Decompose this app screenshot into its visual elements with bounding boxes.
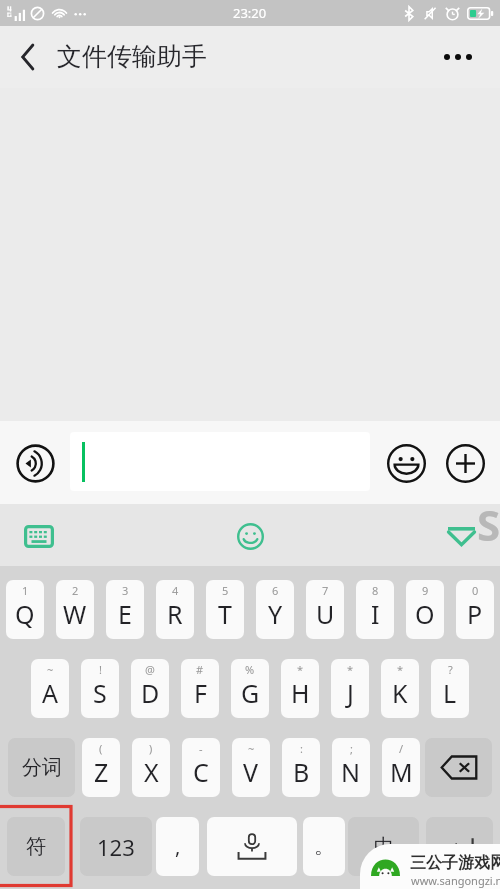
button[interactable]: Emoji xyxy=(381,438,431,488)
staticText: 分词 xyxy=(22,755,62,780)
button[interactable]: , xyxy=(156,817,199,876)
staticText: J xyxy=(347,676,354,710)
button[interactable]: 2 xyxy=(56,580,94,639)
staticText: G xyxy=(241,676,260,710)
staticText: 1 xyxy=(22,583,29,598)
button[interactable]: 8 xyxy=(356,580,394,639)
button[interactable]: 3 xyxy=(106,580,144,639)
button[interactable]: : xyxy=(282,738,320,797)
staticText: 2 xyxy=(72,583,79,598)
staticText: 7 xyxy=(322,583,329,598)
staticText: R xyxy=(167,597,183,631)
staticText: A xyxy=(42,676,58,710)
staticText: Z xyxy=(94,755,109,789)
button[interactable]: More options xyxy=(436,26,500,88)
button[interactable]: ; xyxy=(332,738,370,797)
staticText: N xyxy=(341,755,361,789)
staticText: I xyxy=(371,597,380,631)
button[interactable]: / xyxy=(382,738,420,797)
staticText: 。 xyxy=(314,834,334,859)
staticText: 9 xyxy=(422,583,429,598)
button[interactable]: @ xyxy=(131,659,169,718)
staticText: / xyxy=(399,741,404,756)
button[interactable]: * xyxy=(331,659,369,718)
staticText: * xyxy=(347,662,354,677)
staticText: ; xyxy=(350,741,353,756)
staticText: E xyxy=(118,597,132,631)
staticText: L xyxy=(443,676,457,710)
button[interactable]: ~ xyxy=(232,738,270,797)
button[interactable]: 7 xyxy=(306,580,344,639)
staticText: X xyxy=(144,755,159,789)
staticText: : xyxy=(300,741,303,756)
button[interactable]: 中 xyxy=(348,817,419,876)
button[interactable]: ! xyxy=(81,659,119,718)
staticText: U xyxy=(316,597,335,631)
staticText: D xyxy=(141,676,160,710)
button[interactable]: 分词 xyxy=(8,738,75,797)
staticText: M xyxy=(390,755,413,789)
button[interactable]: 。 xyxy=(303,817,345,876)
button[interactable]: 5 xyxy=(206,580,244,639)
button[interactable]: Voice input xyxy=(10,438,60,488)
staticText: , xyxy=(175,833,181,860)
staticText: 三公子游戏网 xyxy=(410,853,500,873)
button[interactable]: 符 xyxy=(7,817,65,876)
button[interactable]: ) xyxy=(132,738,170,797)
button[interactable]: Back xyxy=(0,26,56,88)
button[interactable]: Hide keyboard xyxy=(439,514,483,558)
staticText: ( xyxy=(99,741,103,756)
staticText: ? xyxy=(448,662,453,677)
button[interactable]: - xyxy=(182,738,220,797)
button[interactable]: 9 xyxy=(406,580,444,639)
button[interactable]: Keyboard xyxy=(17,514,61,558)
staticText: S xyxy=(477,496,500,553)
staticText: @ xyxy=(145,662,155,677)
button[interactable]: ~ xyxy=(31,659,69,718)
staticText: V xyxy=(243,755,259,789)
staticText: O xyxy=(415,597,435,631)
staticText: - xyxy=(199,741,203,756)
staticText: Q xyxy=(15,597,35,631)
staticText: 3 xyxy=(122,583,129,598)
button[interactable]: 4 xyxy=(156,580,194,639)
staticText: S xyxy=(93,676,107,710)
staticText: C xyxy=(193,755,209,789)
staticText: ~ xyxy=(248,741,255,756)
staticText: * xyxy=(297,662,304,677)
button[interactable]: ? xyxy=(431,659,469,718)
staticText: T xyxy=(218,597,232,631)
button[interactable]: # xyxy=(181,659,219,718)
staticText: % xyxy=(245,662,255,677)
staticText: ~ xyxy=(47,662,54,677)
button[interactable]: ( xyxy=(82,738,120,797)
staticText: K xyxy=(392,676,408,710)
button[interactable]: 123 xyxy=(80,817,152,876)
staticText: 文件传输助手 xyxy=(57,41,207,72)
staticText: ) xyxy=(149,741,153,756)
button[interactable]: 1 xyxy=(6,580,44,639)
staticText: H xyxy=(291,676,310,710)
staticText: # xyxy=(196,662,204,677)
staticText: 8 xyxy=(372,583,379,598)
staticText: W xyxy=(63,597,87,631)
staticText: ! xyxy=(99,662,102,677)
staticText: www.sangongzi.net xyxy=(411,873,500,888)
button[interactable]: Enter xyxy=(426,817,493,876)
staticText: 0 xyxy=(472,583,479,598)
button[interactable]: * xyxy=(381,659,419,718)
staticText: * xyxy=(397,662,404,677)
button[interactable]: Space xyxy=(207,817,297,876)
staticText: 5 xyxy=(222,583,229,598)
button[interactable]: * xyxy=(281,659,319,718)
button[interactable]: Backspace xyxy=(425,738,492,797)
staticText: Y xyxy=(268,597,283,631)
button[interactable]: More functions xyxy=(440,438,490,488)
button[interactable]: 0 xyxy=(456,580,494,639)
button[interactable]: Emoji panel xyxy=(228,514,272,558)
button[interactable] xyxy=(70,432,370,491)
button[interactable]: 6 xyxy=(256,580,294,639)
staticText: 中 xyxy=(374,834,394,859)
staticText: P xyxy=(467,597,483,631)
button[interactable]: % xyxy=(231,659,269,718)
